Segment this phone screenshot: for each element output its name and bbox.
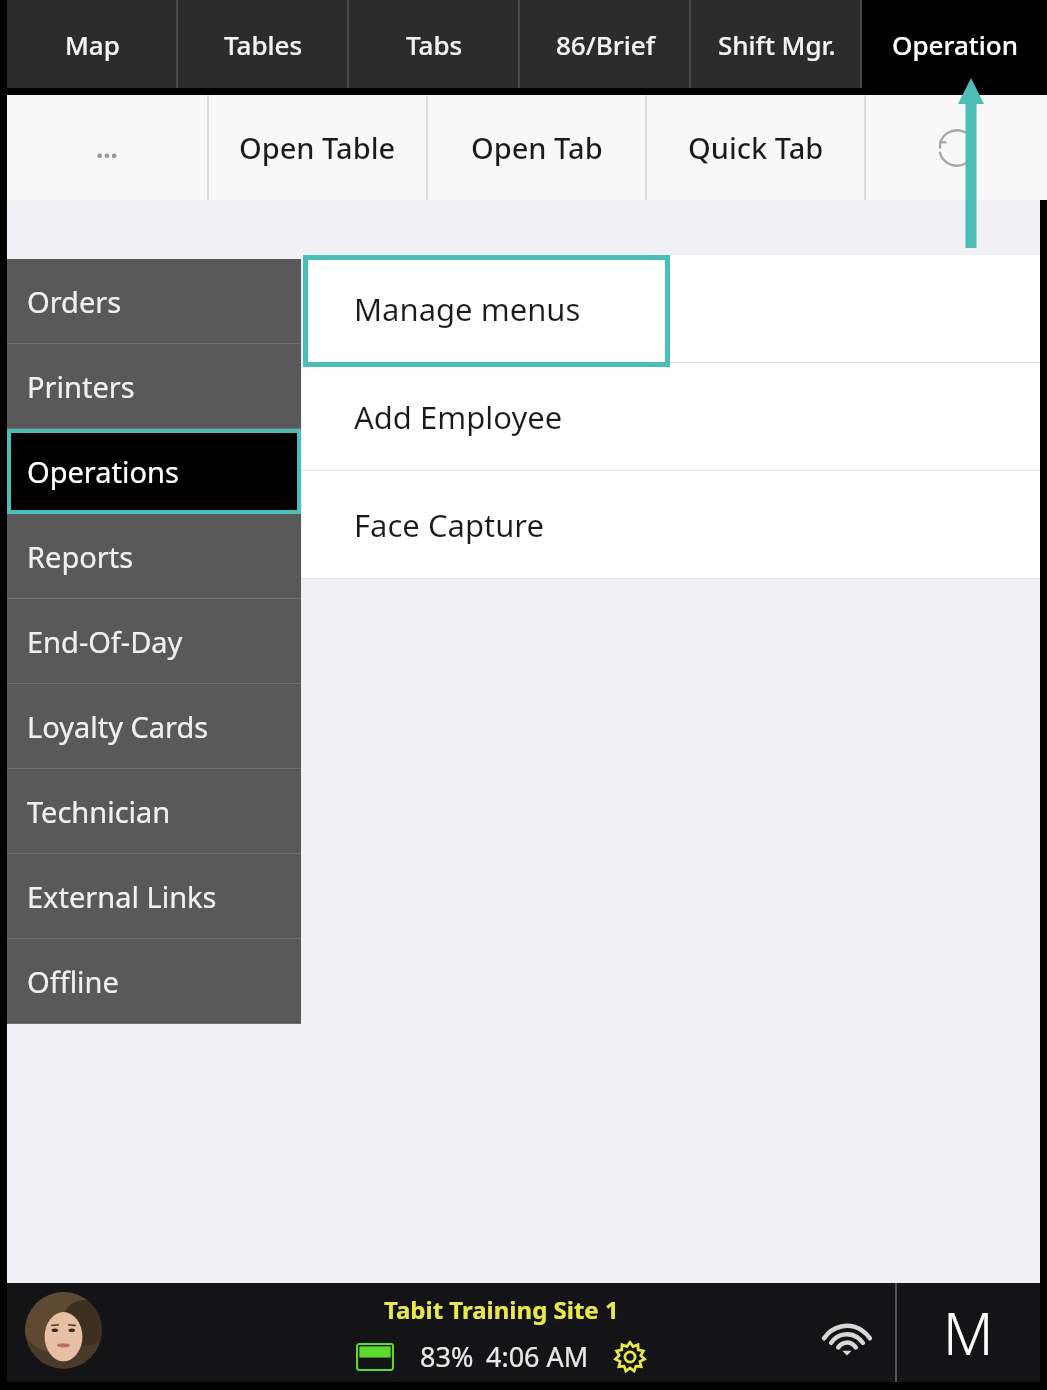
staticText: ... (96, 130, 118, 165)
button[interactable]: Orders (7, 259, 301, 344)
button[interactable]: 86/Brief (520, 0, 691, 88)
button[interactable]: Loyalty Cards (7, 684, 301, 769)
button[interactable]: Settings (613, 1340, 647, 1374)
staticText: 86/Brief (556, 27, 655, 62)
staticText: Open Table (239, 128, 396, 167)
staticText: Manage menus (354, 288, 581, 330)
staticText: Face Capture (354, 504, 544, 546)
staticText: Tabit Training Site 1 (384, 1293, 619, 1326)
button[interactable]: Manage menus (302, 255, 1040, 363)
button[interactable]: External Links (7, 854, 301, 939)
button[interactable]: Tabs (349, 0, 520, 88)
staticText: Reports (27, 537, 134, 576)
button[interactable]: Tables (178, 0, 349, 88)
staticText: Operation (892, 27, 1018, 62)
button[interactable]: Face Capture (302, 471, 1040, 579)
staticText: Quick Tab (688, 128, 824, 167)
staticText: Technician (27, 792, 171, 831)
button[interactable]: Refresh (866, 95, 1047, 200)
staticText: Tabs (406, 27, 463, 62)
button[interactable]: Shift Mgr. (691, 0, 862, 88)
staticText: 4:06 AM (486, 1338, 589, 1375)
button[interactable]: Operation (862, 0, 1047, 88)
staticText: Printers (27, 367, 135, 406)
staticText: Add Employee (354, 396, 563, 438)
staticText: External Links (27, 877, 217, 916)
button[interactable]: Technician (7, 769, 301, 854)
button[interactable]: M (896, 1283, 1040, 1382)
staticText: End-Of-Day (27, 622, 183, 661)
button[interactable]: ... (7, 95, 207, 200)
staticText: 83% (420, 1338, 474, 1375)
staticText: Shift Mgr. (718, 27, 836, 62)
button[interactable]: Offline (7, 939, 301, 1024)
staticText: Tables (224, 27, 303, 62)
button[interactable]: End-Of-Day (7, 599, 301, 684)
staticText: Map (65, 27, 120, 62)
button[interactable]: Quick Tab (647, 95, 864, 200)
button[interactable]: Printers (7, 344, 301, 429)
staticText: Offline (27, 962, 119, 1001)
staticText: Open Tab (471, 128, 603, 167)
staticText: Operations (27, 452, 179, 491)
staticText: Orders (27, 282, 122, 321)
button[interactable]: Reports (7, 514, 301, 599)
button[interactable]: Profile (25, 1292, 102, 1369)
button[interactable]: Wi-Fi (802, 1283, 892, 1382)
button[interactable]: Map (7, 0, 178, 88)
button[interactable]: Open Table (209, 95, 426, 200)
button[interactable]: Open Tab (428, 95, 645, 200)
staticText: M (943, 1293, 994, 1372)
button[interactable]: Add Employee (302, 363, 1040, 471)
staticText: Loyalty Cards (27, 707, 209, 746)
button[interactable]: Operations (11, 433, 297, 510)
